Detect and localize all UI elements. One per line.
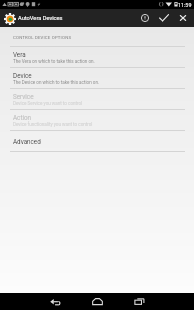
staticText: CONTROL DEVICE OPTIONS xyxy=(13,35,72,40)
button[interactable]: Vera xyxy=(0,47,194,67)
button[interactable]: Advanced xyxy=(0,131,194,151)
staticText: Vera xyxy=(13,51,26,58)
button[interactable] xyxy=(3,12,16,25)
staticText: Device Service you want to control xyxy=(13,101,83,106)
button[interactable]: Cancel xyxy=(173,9,193,27)
button[interactable]: Action xyxy=(0,110,194,130)
staticText: Device xyxy=(13,72,32,79)
staticText: Action xyxy=(13,114,32,121)
staticText: Service xyxy=(13,93,34,100)
button[interactable]: Recents xyxy=(129,293,149,310)
button[interactable]: Service xyxy=(0,89,194,109)
button[interactable]: Back xyxy=(45,293,65,310)
button[interactable]: Home xyxy=(87,293,107,310)
staticText: AutoVera Devices xyxy=(18,15,63,22)
button[interactable]: Info xyxy=(136,9,154,27)
button[interactable]: Device xyxy=(0,68,194,88)
staticText: 11:59 xyxy=(178,2,192,8)
button[interactable]: Done xyxy=(154,9,173,27)
staticText: The Vera on which to take this action on… xyxy=(13,59,95,64)
staticText: Advanced xyxy=(13,138,41,145)
staticText: Device functionality you want to control xyxy=(13,122,93,127)
staticText: The Device on which to take this action … xyxy=(13,80,100,85)
